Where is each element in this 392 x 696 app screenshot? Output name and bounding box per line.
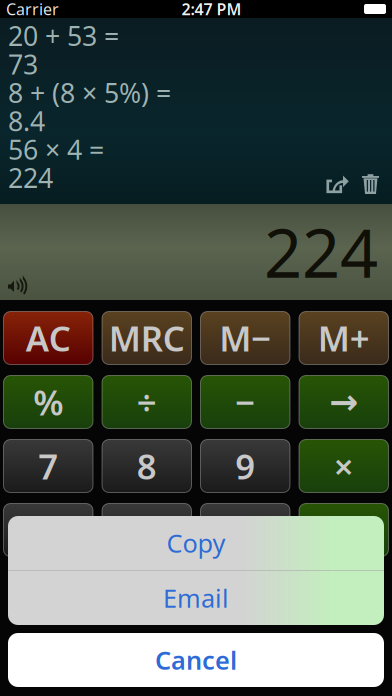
button[interactable]: ÷ — [101, 375, 192, 429]
staticText: 4 — [38, 507, 58, 553]
staticText: 20 + 53 = — [8, 18, 119, 53]
button[interactable]: + — [298, 503, 389, 557]
staticText: 7 — [38, 443, 58, 489]
staticText: 9 — [235, 443, 255, 489]
button[interactable]: × — [298, 439, 389, 493]
staticText: % — [33, 379, 63, 425]
staticText: 224 — [264, 208, 378, 296]
button[interactable]: Email — [8, 571, 384, 625]
button[interactable]: 6 — [200, 503, 290, 557]
staticText: + — [334, 507, 354, 553]
staticText: 73 — [8, 46, 38, 82]
staticText: 5 — [137, 507, 157, 553]
button[interactable]: Share — [320, 168, 355, 199]
button[interactable]: − — [200, 375, 290, 429]
staticText: − — [235, 379, 255, 425]
staticText: 8.4 — [8, 103, 45, 139]
button[interactable]: Clear history — [355, 167, 386, 201]
staticText: 8 — [137, 443, 157, 489]
staticText: Email — [163, 581, 229, 615]
staticText: Carrier — [6, 0, 59, 20]
staticText: 8 + (8 × 5%) = — [8, 75, 171, 110]
button[interactable]: 4 — [3, 503, 93, 557]
staticText: M+ — [318, 315, 370, 361]
staticText: 6 — [235, 507, 255, 553]
button[interactable]: % — [3, 375, 93, 429]
button[interactable]: Copy — [8, 516, 384, 570]
staticText: 2:47 PM — [181, 0, 241, 20]
button[interactable]: 7 — [3, 439, 93, 493]
button[interactable]: AC — [3, 311, 93, 365]
staticText: → — [329, 382, 358, 422]
staticText: Cancel — [155, 643, 237, 677]
button[interactable]: 8 — [101, 439, 192, 493]
staticText: 224 — [8, 160, 53, 195]
staticText: AC — [26, 315, 71, 361]
staticText: ÷ — [137, 379, 157, 425]
staticText: MRC — [109, 315, 185, 361]
button[interactable]: MRC — [101, 311, 192, 365]
staticText: 56 × 4 = — [8, 132, 104, 167]
button[interactable]: 9 — [200, 439, 290, 493]
staticText: M− — [219, 315, 271, 361]
button[interactable]: → — [298, 375, 389, 429]
button[interactable]: M− — [200, 311, 290, 365]
staticText: Copy — [166, 526, 225, 560]
button[interactable]: 5 — [101, 503, 192, 557]
button[interactable]: Cancel — [8, 633, 384, 687]
button[interactable]: M+ — [298, 311, 389, 365]
staticText: × — [334, 443, 354, 489]
